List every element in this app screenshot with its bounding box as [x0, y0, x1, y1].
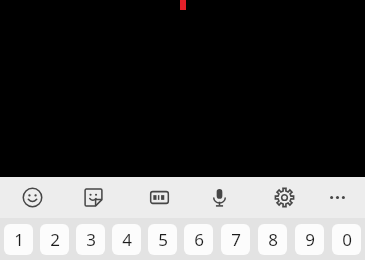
button[interactable]: 6 [180, 218, 217, 260]
staticText: 5 [158, 228, 168, 251]
button[interactable]: 3 [72, 218, 108, 260]
staticText: 2 [50, 228, 60, 251]
staticText: 4 [122, 228, 132, 251]
button[interactable]: 0 [328, 218, 365, 260]
staticText: 7 [231, 228, 241, 251]
button[interactable]: 5 [144, 218, 180, 260]
staticText: 8 [268, 228, 278, 251]
button[interactable]: 9 [291, 218, 328, 260]
button[interactable]: 4 [108, 218, 144, 260]
button[interactable]: GIF [140, 177, 178, 218]
button[interactable]: Emoji [13, 177, 51, 218]
button[interactable]: Voice input [200, 177, 238, 218]
button[interactable]: Stickers [74, 177, 112, 218]
button[interactable]: 8 [254, 218, 291, 260]
staticText: 1 [14, 228, 24, 251]
staticText: 0 [342, 228, 352, 251]
button[interactable]: 1 [0, 218, 36, 260]
staticText: 6 [194, 228, 204, 251]
button[interactable]: Settings [265, 177, 303, 218]
button[interactable]: More options [318, 177, 356, 218]
staticText: 9 [305, 228, 315, 251]
staticText: 3 [86, 228, 96, 251]
button[interactable]: 7 [217, 218, 254, 260]
button[interactable]: 2 [36, 218, 72, 260]
